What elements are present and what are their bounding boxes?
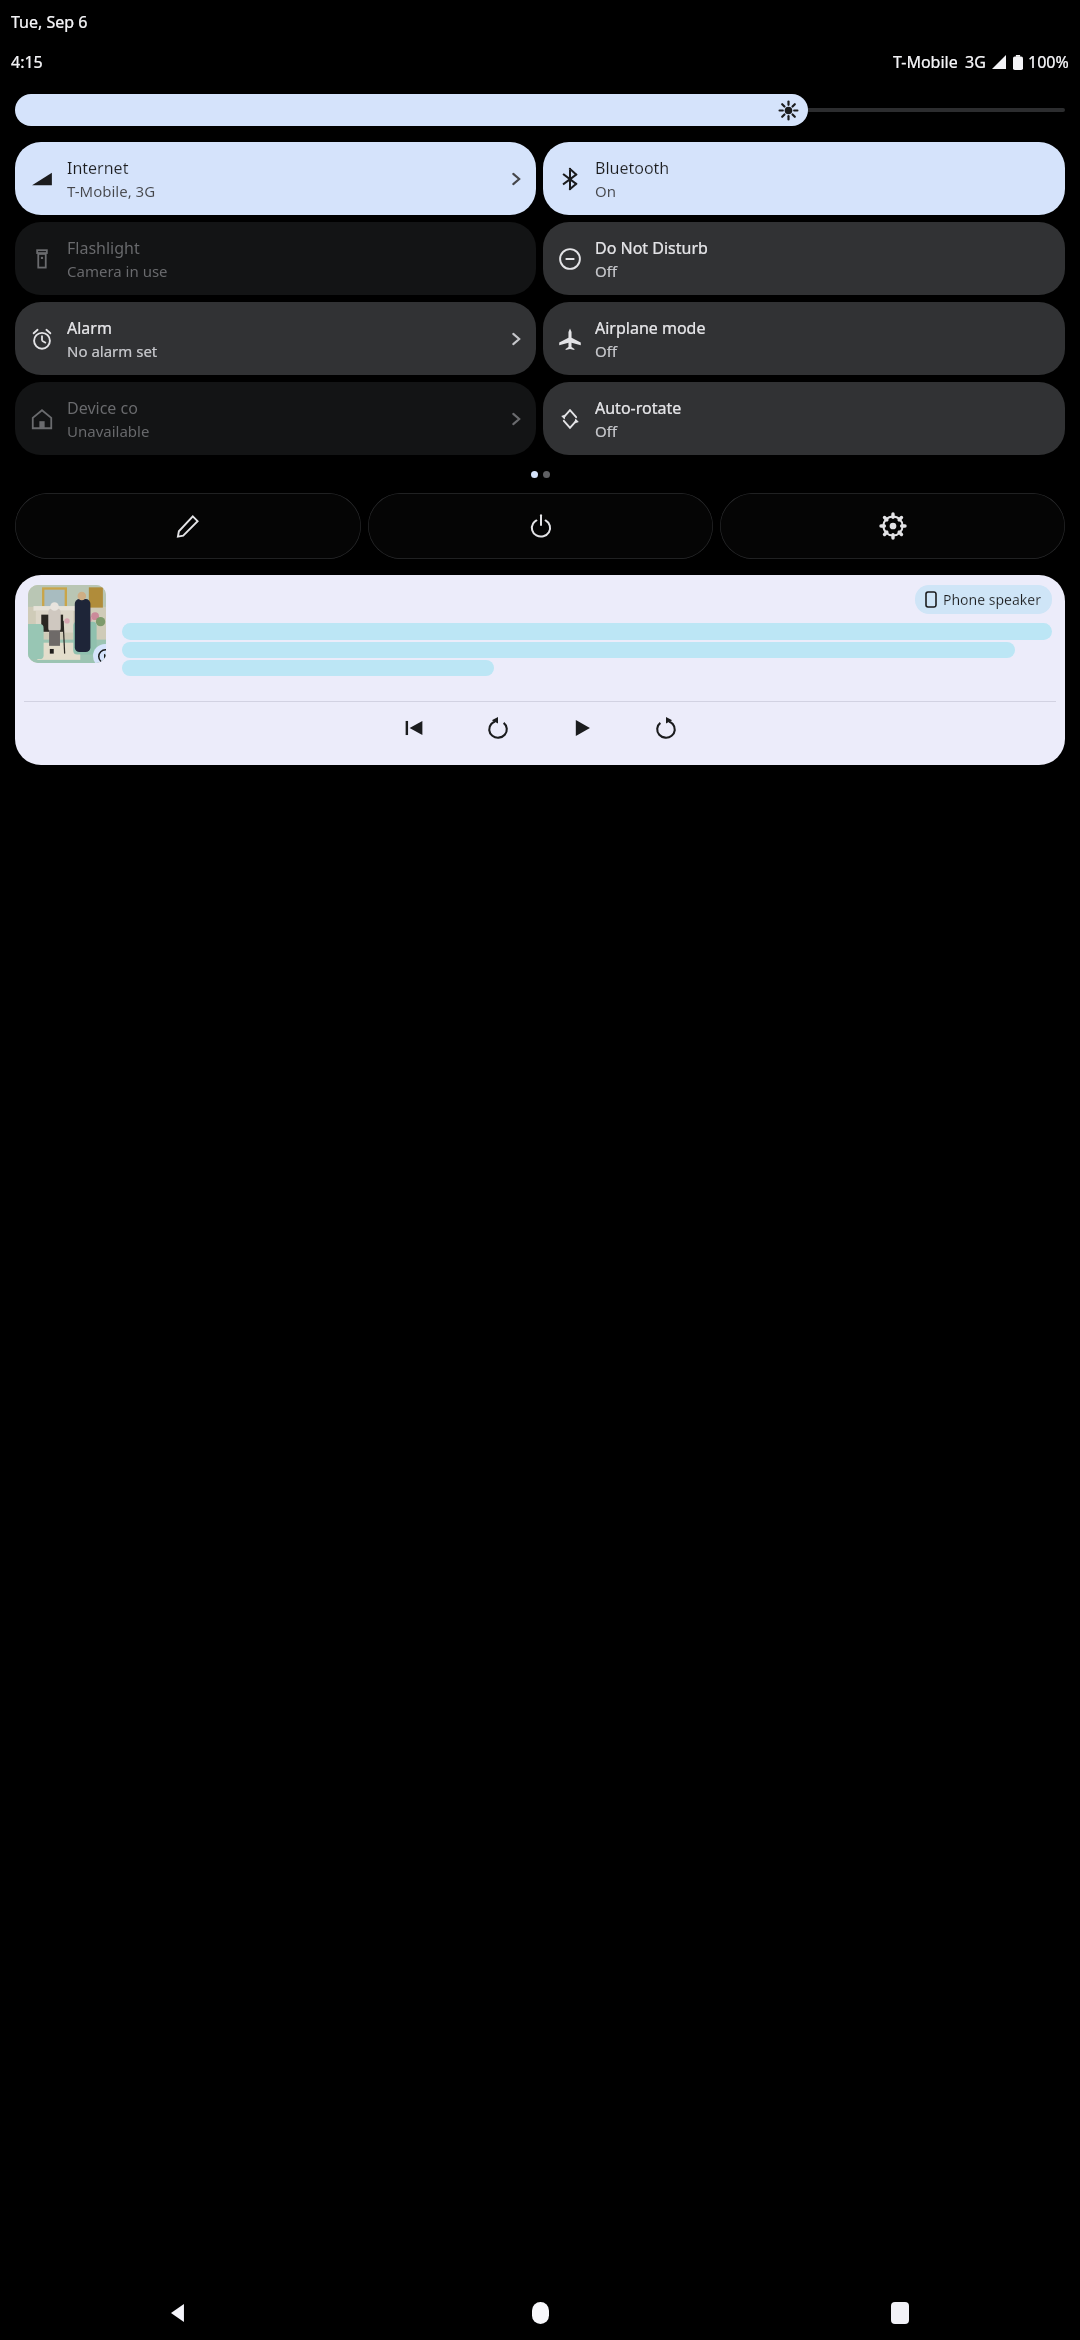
staticText: Device co xyxy=(67,397,138,419)
staticText: Do Not Disturb xyxy=(595,237,708,259)
staticText: T-Mobile, 3G xyxy=(67,181,156,201)
button[interactable]: Airplane mode xyxy=(543,302,1065,375)
button[interactable]: Device co xyxy=(15,382,536,455)
staticText: On xyxy=(595,181,616,201)
staticText: Camera in use xyxy=(67,261,168,281)
button[interactable]: Internet xyxy=(15,142,536,215)
staticText: 100% xyxy=(1028,51,1069,73)
staticText: Phone speaker xyxy=(943,590,1041,609)
button[interactable]: Do Not Disturb xyxy=(543,222,1065,295)
staticText: Unavailable xyxy=(67,421,150,441)
button[interactable]: Play xyxy=(560,706,604,750)
button[interactable]: Previous xyxy=(392,706,436,750)
button[interactable]: Phone speaker xyxy=(15,575,1065,765)
button[interactable]: Recents xyxy=(720,2290,1080,2336)
button[interactable]: Home xyxy=(360,2290,720,2336)
staticText: No alarm set xyxy=(67,341,158,361)
staticText: 3G xyxy=(965,51,986,73)
button[interactable]: Settings xyxy=(720,493,1065,559)
button[interactable]: Power xyxy=(368,493,713,559)
button[interactable]: Brightness xyxy=(15,94,808,126)
staticText: Off xyxy=(595,421,618,441)
staticText: T-Mobile xyxy=(893,51,958,73)
staticText: Off xyxy=(595,261,618,281)
staticText: Airplane mode xyxy=(595,317,706,339)
staticText: Tue, Sep 6 xyxy=(11,11,88,33)
button[interactable]: Phone speaker xyxy=(915,585,1052,614)
staticText: Auto-rotate xyxy=(595,397,682,419)
button[interactable]: Bluetooth xyxy=(543,142,1065,215)
button[interactable]: Rewind xyxy=(476,706,520,750)
staticText: Off xyxy=(595,341,618,361)
button[interactable]: Flashlight xyxy=(15,222,536,295)
staticText: Internet xyxy=(67,157,129,179)
button[interactable]: Edit xyxy=(15,493,361,559)
staticText: Bluetooth xyxy=(595,157,670,179)
staticText: 4:15 xyxy=(11,51,43,73)
button[interactable]: Alarm xyxy=(15,302,536,375)
button[interactable]: Forward xyxy=(644,706,688,750)
staticText: Flashlight xyxy=(67,237,140,259)
button[interactable]: Back xyxy=(0,2290,360,2336)
staticText: Alarm xyxy=(67,317,112,339)
button[interactable]: Auto-rotate xyxy=(543,382,1065,455)
